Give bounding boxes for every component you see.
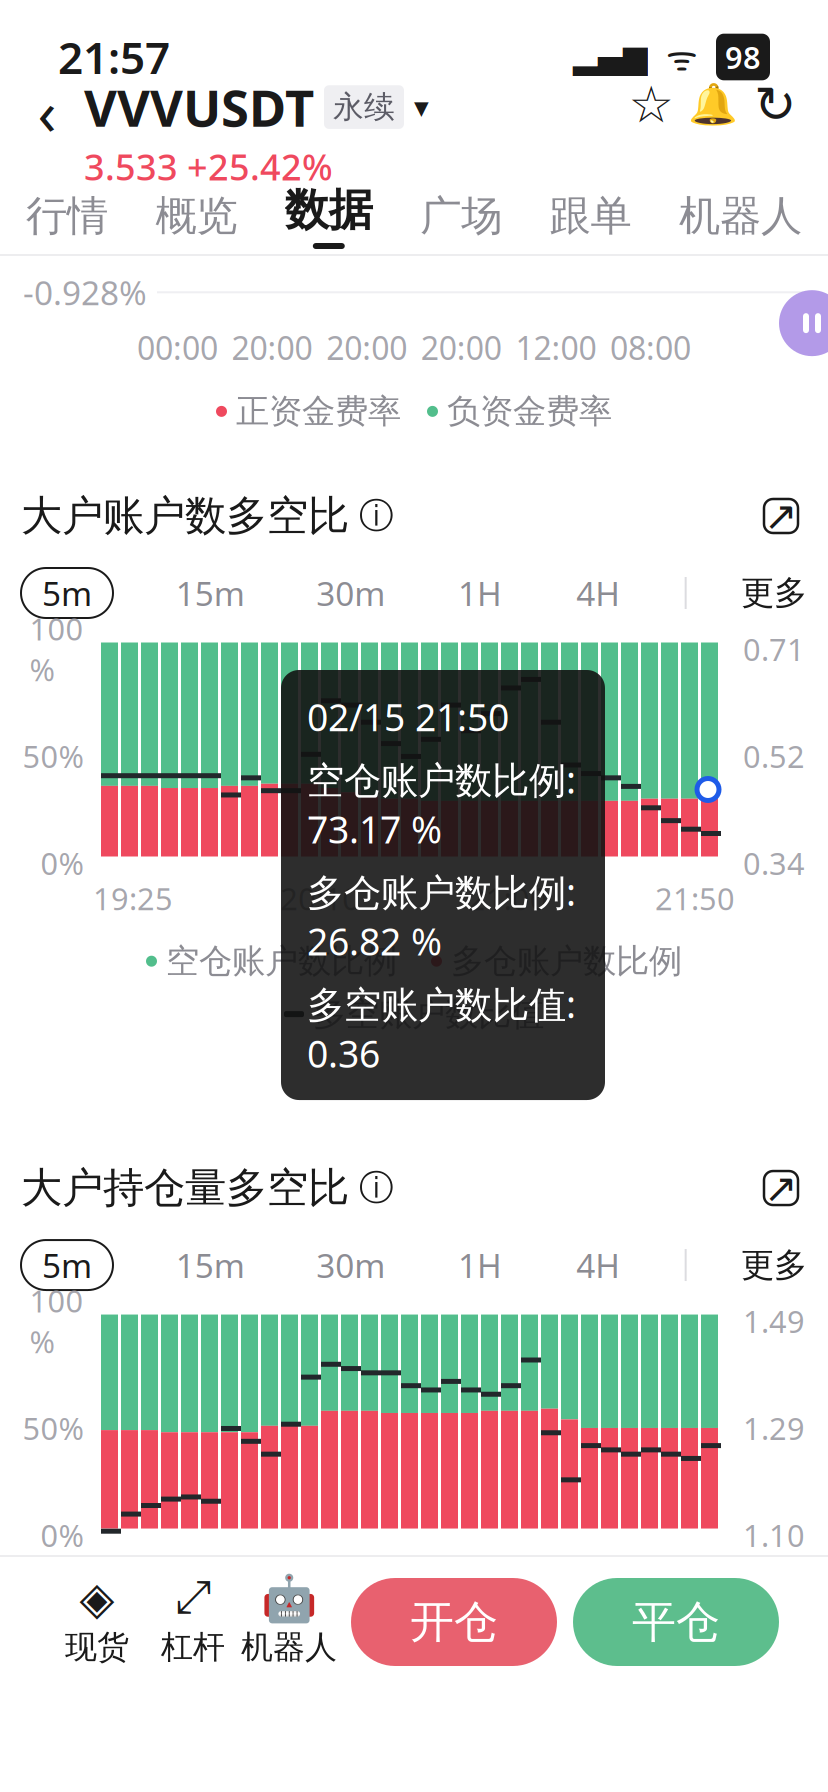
button[interactable]: 4H [566,1240,630,1290]
staticText: 20:00 [232,326,313,369]
staticText: 空仓账户数比例: 73.17 % [307,755,576,854]
staticText: 广场 [420,191,502,241]
button[interactable]: Favorite [620,73,682,135]
button[interactable]: 15m [167,568,253,618]
staticText: 0.71 [743,629,805,669]
button[interactable]: 🤖 [241,1574,337,1670]
staticText: 00:00 [137,326,218,369]
staticText: 15m [176,571,245,615]
button[interactable]: 跟单 [550,186,632,246]
staticText: 30m [316,571,385,615]
staticText: 多空账户数比值: 0.36 [307,979,576,1078]
staticText: 行情 [26,191,108,241]
staticText: 更多 [741,1245,807,1285]
staticText: 20:10 [280,878,360,919]
staticText: 永续 [333,88,395,126]
staticText: 20:00 [421,326,502,369]
button[interactable]: Alerts [682,73,744,135]
button[interactable]: 5m [21,568,113,618]
staticText: 正资金费率 [236,391,401,432]
staticText: 大户持仓量多空比 [21,1163,349,1213]
staticText: 大户账户数多空比 [21,491,349,541]
staticText: 空仓账户数比例 [166,941,397,982]
staticText: 1H [458,571,502,615]
staticText: 20:00 [326,326,407,369]
staticText: 30m [316,1243,385,1287]
button[interactable]: ◈ [49,1574,145,1670]
staticText: 19:25 [93,1550,173,1591]
staticText: ▾ [414,90,429,124]
staticText: 08:00 [610,326,691,369]
staticText: 0.52 [743,736,805,776]
button[interactable]: 开仓 [351,1578,557,1666]
staticText: 0% [40,1515,83,1555]
staticText: 开仓 [410,1595,498,1649]
button[interactable]: 4H [566,568,630,618]
staticText: ☆ [628,76,673,133]
button[interactable]: 平仓 [573,1578,779,1666]
staticText: 50% [22,1408,83,1448]
button[interactable]: Floating assistant [779,290,828,356]
staticText: ‹ [37,71,56,152]
staticText: 多仓账户数比例: 26.82 % [307,867,576,966]
staticText: ⤢ [175,1576,211,1620]
staticText: 多仓账户数比例 [451,941,682,982]
staticText: 19:25 [93,878,173,919]
staticText: 5m [42,571,92,615]
button[interactable]: 机器人 [679,186,802,246]
staticText: 98 [725,37,761,77]
staticText: 机器人 [679,191,802,241]
button[interactable]: ⤢ [145,1574,241,1670]
button[interactable]: 5m [21,1240,113,1290]
staticText: ▂▄▆ [573,39,648,75]
staticText: 21:00 [468,1550,548,1591]
staticText: 多空账户数比值 [313,994,544,1035]
staticText: 02/15 21:50 [307,692,509,742]
button[interactable]: 30m [308,1240,394,1290]
button[interactable]: 概览 [155,186,237,246]
staticText: -0.928% [23,270,147,314]
button[interactable]: 1H [448,1240,512,1290]
staticText: 21:57 [58,28,170,86]
staticText: 4H [576,571,620,615]
staticText: 21:50 [655,1550,735,1591]
staticText: 🤖 [261,1572,317,1624]
staticText: 1.49 [743,1301,805,1341]
button[interactable]: Expand chart [755,490,807,542]
staticText: 0% [40,843,83,883]
staticText: 现货 [65,1627,129,1667]
button[interactable]: Share [744,73,806,135]
staticText: ⓘ [349,1167,394,1209]
staticText: 4H [576,1243,620,1287]
button[interactable]: 广场 [420,186,502,246]
button[interactable]: 行情 [26,186,108,246]
staticText: 15m [176,1243,245,1287]
staticText: ↗ [764,1165,798,1211]
staticText: ◈ [79,1573,114,1624]
staticText: 更多 [741,572,807,613]
staticText: 21:50 [655,878,735,919]
button[interactable]: Expand chart [755,1162,807,1214]
button[interactable]: 更多 [741,568,807,618]
staticText: 0.34 [743,843,805,883]
staticText: ⓘ [349,495,394,537]
staticText: 50% [22,736,83,776]
staticText: 1.10 [743,1515,805,1555]
staticText: 🔔 [688,82,738,127]
staticText: 5m [42,1243,92,1287]
button[interactable]: 30m [308,568,394,618]
button[interactable]: Back [22,73,72,149]
button[interactable]: 1H [448,568,512,618]
staticText: 100% [29,1280,83,1362]
staticText: 21:00 [468,878,548,919]
button[interactable]: 更多 [741,1240,807,1290]
staticText: 20:10 [280,1550,360,1591]
staticText: ↻ [754,76,796,133]
button[interactable]: 数据 [285,183,373,249]
staticText: 平仓 [632,1595,720,1649]
staticText: ᯤ [648,34,716,80]
staticText: 12:00 [515,326,596,369]
staticText: 数据 [285,183,373,237]
staticText: ↗ [764,493,798,539]
button[interactable]: 15m [167,1240,253,1290]
